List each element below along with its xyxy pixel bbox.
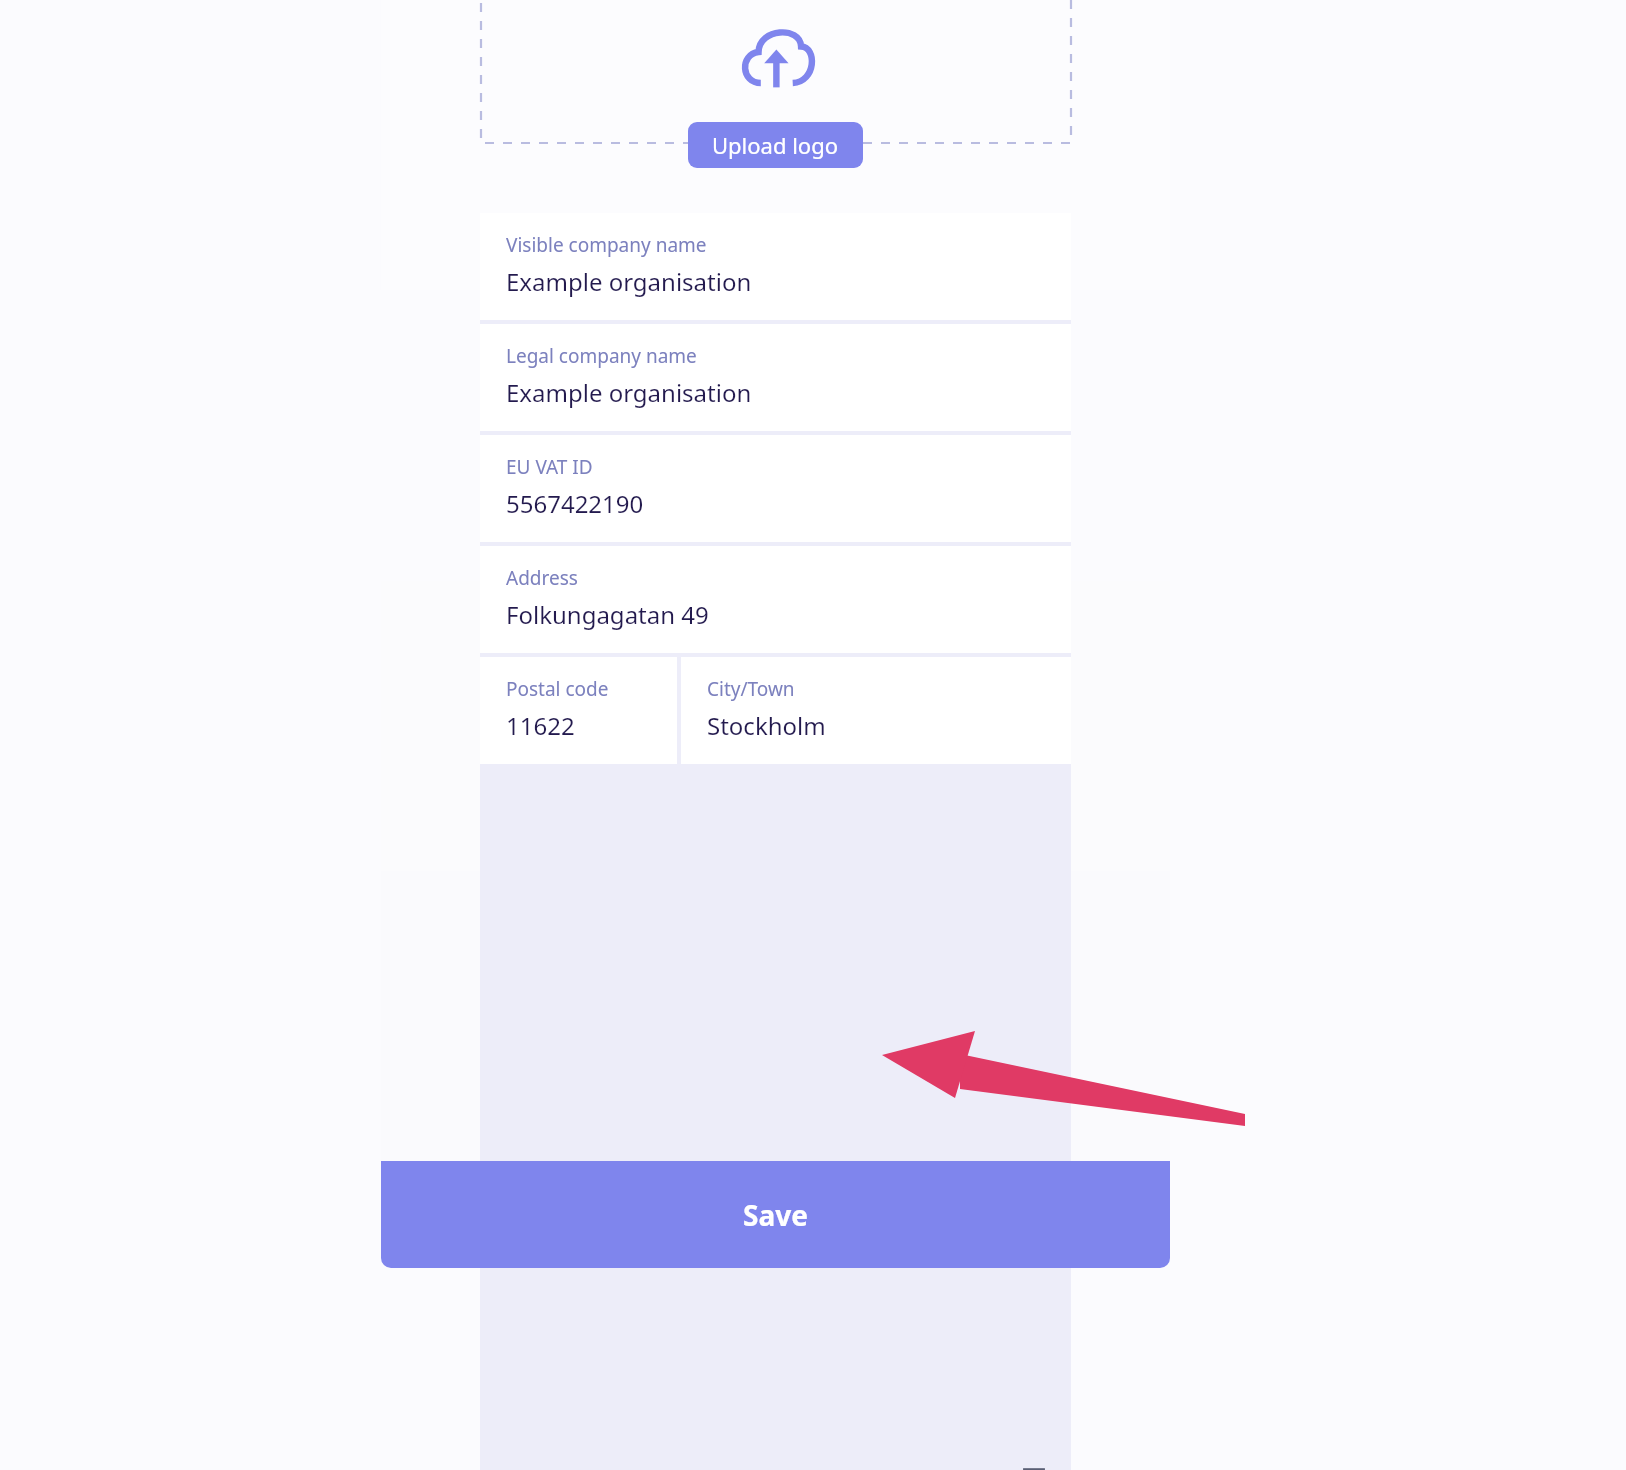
staticText: Address [506, 565, 578, 591]
staticText: 11622 [506, 709, 575, 742]
staticText: Example organisation [506, 265, 752, 298]
button[interactable]: Save [381, 1161, 1170, 1268]
staticText: Save [743, 1196, 808, 1234]
staticText: Example organisation [506, 376, 752, 409]
button[interactable]: City/Town [681, 657, 1071, 764]
staticText: City/Town [707, 676, 795, 702]
staticText: EU VAT ID [506, 454, 593, 480]
staticText: Folkungagatan 49 [506, 598, 709, 631]
staticText: Upload logo [712, 130, 839, 160]
staticText: Stockholm [707, 709, 826, 742]
button[interactable]: Address [480, 546, 1071, 653]
staticText: 5567422190 [506, 487, 644, 520]
staticText: Postal code [506, 676, 609, 702]
button[interactable]: Postal code [480, 657, 677, 764]
staticText: Visible company name [506, 232, 707, 258]
button[interactable]: EU VAT ID [480, 435, 1071, 542]
staticText: Legal company name [506, 343, 697, 369]
button[interactable]: Visible company name [480, 213, 1071, 320]
button[interactable]: Legal company name [480, 324, 1071, 431]
other: Upload logo icon [738, 26, 814, 88]
button[interactable]: Upload logo [688, 122, 863, 168]
